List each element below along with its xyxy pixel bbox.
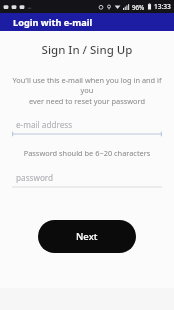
button[interactable]: e-mail address [12,118,162,137]
button[interactable]: password [12,171,162,190]
staticText: Sign In / Sing Up [0,42,174,58]
staticText: Next [76,230,98,243]
button[interactable]: Next [38,220,136,253]
staticText: Login with e-mail [13,16,93,29]
staticText: password [16,172,54,183]
staticText: Password should be 6~20 characters [0,148,174,158]
staticText: 13:33 [154,2,171,11]
staticText: You'll use this e-mail when you log in a… [6,75,168,106]
staticText: 96% [132,3,145,11]
staticText: e-mail address [16,119,73,130]
